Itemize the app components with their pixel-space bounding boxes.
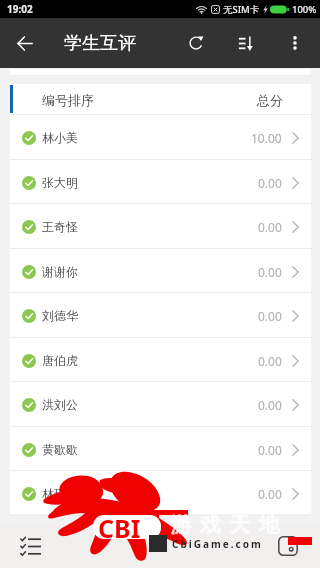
staticText: 0.00 [258,486,282,502]
staticText: 0.00 [258,175,282,191]
staticText: 谢谢你 [42,264,78,279]
staticText: 0.00 [258,353,282,369]
button[interactable]: 谢谢你 [10,249,311,294]
button[interactable]: Refresh [172,18,220,68]
button[interactable]: 林瑞林 [10,471,311,516]
button[interactable]: Sort [221,18,269,68]
staticText: 无SIM卡 [223,3,260,16]
button[interactable]: Notes [273,531,303,561]
staticText: 0.00 [258,308,282,324]
staticText: 张大明 [42,175,78,190]
button[interactable]: 编号排序 [10,84,311,115]
button[interactable]: 张大明 [10,160,311,205]
button[interactable]: 黄歇歇 [10,427,311,472]
button[interactable]: 刘德华 [10,293,311,338]
staticText: CbiGame.com [172,537,263,551]
staticText: 洪刘公 [42,397,78,412]
staticText: 0.00 [258,219,282,235]
staticText: 学生互评 [64,32,136,55]
staticText: 王奇怪 [42,219,78,234]
button[interactable]: 洪刘公 [10,382,311,427]
staticText: 总分 [257,92,283,108]
staticText: 唐伯虎 [42,353,78,368]
staticText: 林瑞林 [42,486,78,501]
button[interactable]: More options [272,18,318,68]
staticText: 黄歇歇 [42,442,78,457]
staticText: 0.00 [258,264,282,280]
staticText: 刘德华 [42,308,78,323]
staticText: 100% [292,3,317,16]
staticText: 19:02 [7,2,33,16]
staticText: 游戏天地 [166,512,284,538]
staticText: 0.00 [258,442,282,458]
staticText: 编号排序 [42,92,94,108]
button[interactable]: Back [0,18,49,68]
button[interactable]: Checklist [11,527,49,565]
button[interactable]: 王奇怪 [10,204,311,249]
button[interactable]: 林小美 [10,115,311,160]
staticText: 10.00 [251,130,282,146]
staticText: 林小美 [42,130,78,145]
staticText: CBI [98,511,141,545]
button[interactable]: 唐伯虎 [10,338,311,383]
staticText: 0.00 [258,397,282,413]
